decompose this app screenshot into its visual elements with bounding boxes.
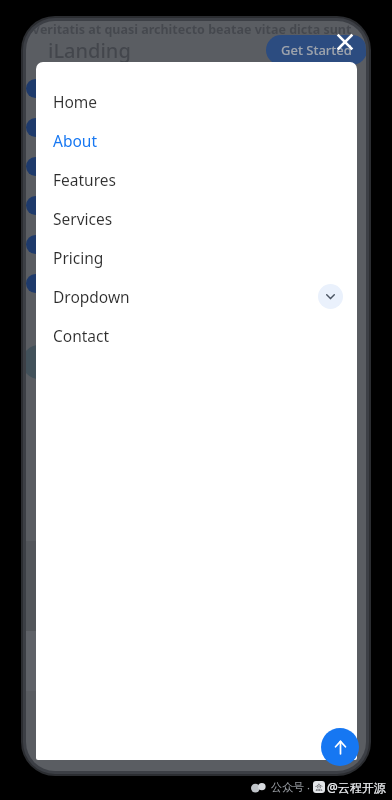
staticText: · [307, 780, 310, 795]
button[interactable]: Pricing [36, 238, 357, 277]
staticText: About [53, 130, 97, 151]
button[interactable]: Close menu [332, 29, 358, 55]
staticText: iLanding [48, 37, 131, 64]
button[interactable]: Home [36, 82, 357, 121]
staticText: Services [53, 208, 113, 229]
staticText: 盒 [315, 782, 323, 792]
staticText: Pricing [53, 247, 104, 268]
button[interactable]: Get Started [266, 35, 366, 65]
staticText: @云程开源 [327, 779, 386, 795]
staticText: Get Started [281, 41, 352, 59]
button[interactable]: Features [36, 160, 357, 199]
button[interactable]: Contact [36, 316, 357, 355]
button[interactable]: About [36, 121, 357, 160]
button[interactable]: Dropdown [36, 277, 357, 316]
button[interactable]: Services [36, 199, 357, 238]
staticText: 公众号 [271, 780, 304, 794]
button[interactable]: Scroll to top [321, 728, 359, 766]
staticText: Contact [53, 325, 110, 346]
staticText: Features [53, 169, 116, 190]
staticText: Veritatis at quasi architecto beatae vit… [32, 21, 352, 38]
staticText: Home [53, 91, 98, 112]
staticText: Dropdown [53, 286, 130, 307]
